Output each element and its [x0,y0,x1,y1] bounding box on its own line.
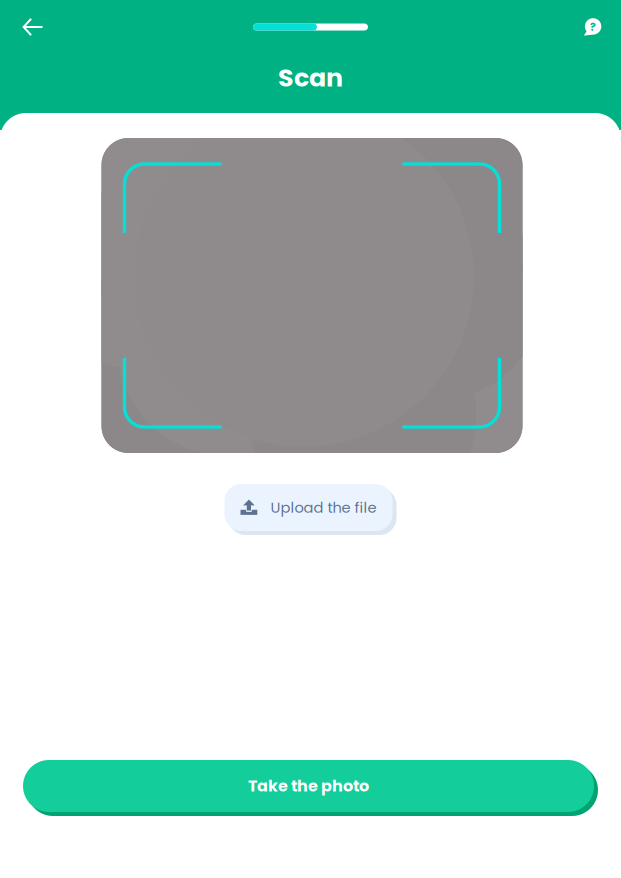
staticText: ? [590,19,596,34]
staticText: Scan [278,60,343,95]
staticText: Take the photo [248,775,369,797]
button[interactable]: Help [572,7,614,47]
button[interactable]: Take the photo [23,760,598,816]
button[interactable]: Upload the file [224,484,396,535]
staticText: Upload the file [270,497,376,518]
button[interactable]: Back [9,7,57,47]
